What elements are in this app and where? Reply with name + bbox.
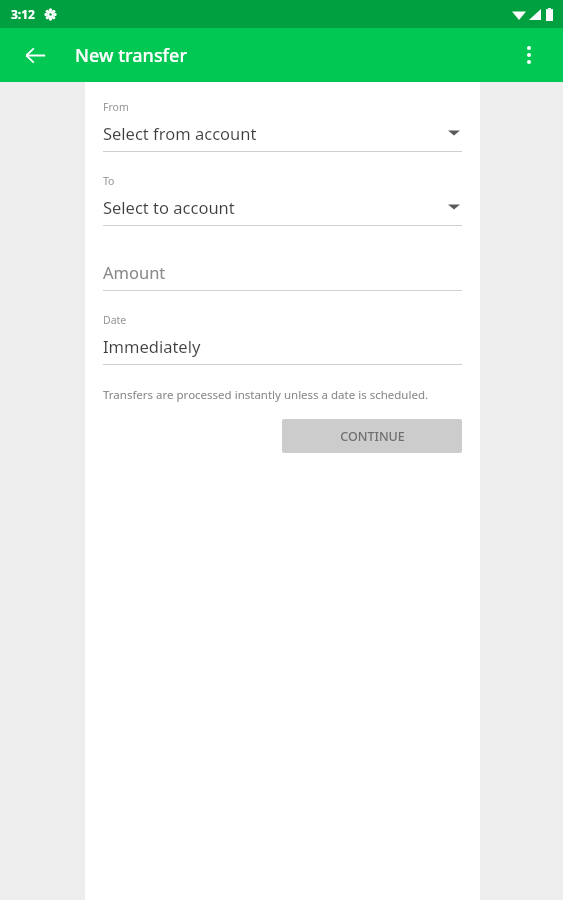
- staticText: Select to account: [103, 196, 448, 218]
- staticText: Transfers are processed instantly unless…: [103, 387, 429, 403]
- button[interactable]: Back: [12, 32, 58, 78]
- staticText: Date: [103, 313, 127, 327]
- staticText: Immediately: [103, 335, 201, 357]
- button[interactable]: Date: [103, 313, 462, 365]
- staticText: Amount: [103, 261, 166, 283]
- button[interactable]: CONTINUE: [282, 419, 462, 453]
- button[interactable]: Amount: [103, 261, 462, 291]
- staticText: New transfer: [75, 43, 187, 68]
- staticText: Select from account: [103, 122, 448, 144]
- staticText: From: [103, 100, 129, 114]
- button[interactable]: From: [103, 100, 462, 152]
- staticText: 3:12: [11, 6, 35, 22]
- button[interactable]: More options: [507, 33, 551, 77]
- staticText: CONTINUE: [340, 428, 405, 445]
- button[interactable]: To: [103, 174, 462, 226]
- staticText: To: [103, 174, 115, 188]
